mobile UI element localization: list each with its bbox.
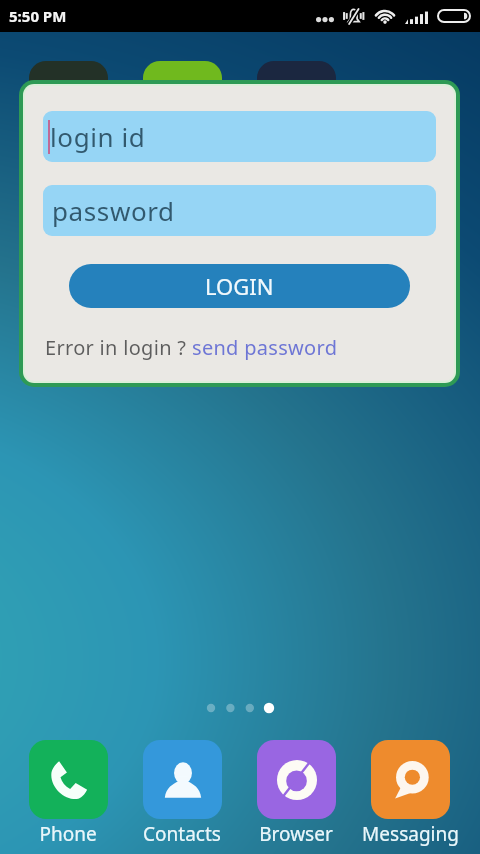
staticText: password (52, 193, 175, 228)
staticText: Error in login ? (45, 334, 192, 361)
button[interactable]: password (43, 185, 436, 236)
button[interactable]: App (257, 61, 336, 140)
staticText: Messaging (362, 821, 459, 847)
staticText: login id (50, 119, 146, 154)
staticText: Contacts (143, 821, 221, 847)
other: More (316, 10, 334, 26)
staticText: Browser (259, 821, 333, 847)
staticText: LOGIN (205, 271, 274, 301)
button[interactable]: Browser (257, 740, 336, 819)
other: Battery (437, 9, 471, 23)
button[interactable]: Contacts (143, 740, 222, 819)
button[interactable]: App (143, 61, 222, 140)
button[interactable]: send password (192, 334, 338, 361)
other: Signal (405, 9, 428, 24)
button[interactable]: App (29, 61, 108, 140)
staticText: 5:50 PM (9, 6, 67, 26)
button[interactable]: Messaging (371, 740, 450, 819)
button[interactable]: login id (43, 111, 436, 162)
button[interactable]: Phone (29, 740, 108, 819)
staticText: Phone (39, 821, 97, 847)
other: Silent mode (342, 8, 365, 25)
button[interactable]: LOGIN (69, 264, 410, 308)
other: Wi-Fi (373, 7, 397, 25)
